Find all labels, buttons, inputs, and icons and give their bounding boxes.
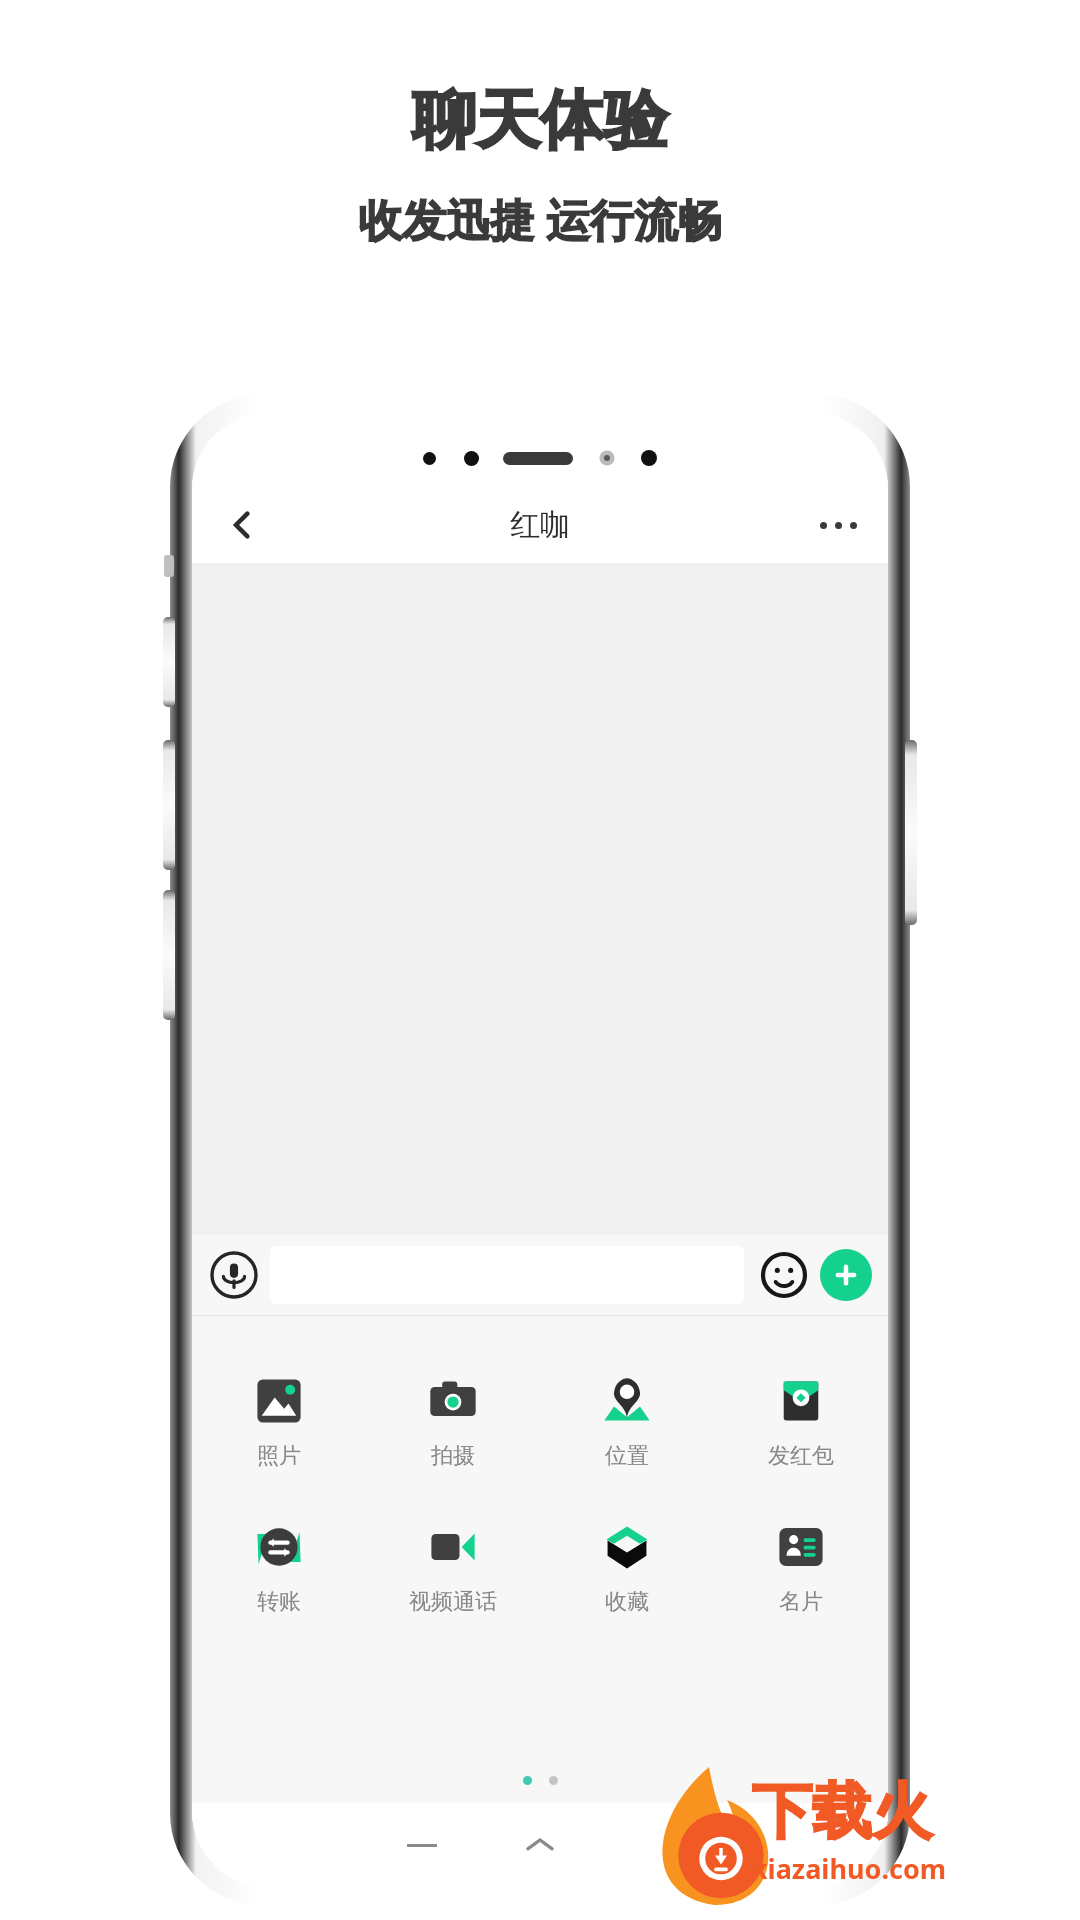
button[interactable]: 收藏 <box>540 1516 714 1620</box>
staticText: 发红包 <box>768 1442 834 1470</box>
button[interactable]: 转账 <box>192 1516 366 1620</box>
staticText: 照片 <box>257 1442 301 1470</box>
button[interactable]: 视频通话 <box>366 1516 540 1620</box>
staticText: 收发迅捷 运行流畅 <box>358 189 722 249</box>
button[interactable]: More actions <box>820 1249 872 1301</box>
staticText: 转账 <box>257 1588 301 1616</box>
staticText: 收藏 <box>605 1588 649 1616</box>
button[interactable]: Voice message <box>208 1249 260 1301</box>
button[interactable]: 名片 <box>714 1516 888 1620</box>
staticText: 聊天体验 <box>412 80 668 161</box>
button[interactable]: Home <box>512 1817 568 1873</box>
staticText: 位置 <box>605 1442 649 1470</box>
staticText: 下载火 <box>752 1774 932 1850</box>
button[interactable]: 拍摄 <box>366 1370 540 1474</box>
staticText: xiazaihuo.com <box>752 1850 947 1887</box>
staticText: 拍摄 <box>431 1442 475 1470</box>
staticText: 名片 <box>779 1588 823 1616</box>
button[interactable]: 发红包 <box>714 1370 888 1474</box>
button[interactable]: 照片 <box>192 1370 366 1474</box>
button[interactable]: 位置 <box>540 1370 714 1474</box>
button[interactable]: More options <box>806 493 870 557</box>
staticText: 视频通话 <box>409 1588 497 1616</box>
button[interactable]: Back <box>210 493 274 557</box>
button[interactable]: Recents <box>394 1817 450 1873</box>
staticText: 红咖 <box>510 506 570 544</box>
button[interactable]: Emoji <box>758 1249 810 1301</box>
